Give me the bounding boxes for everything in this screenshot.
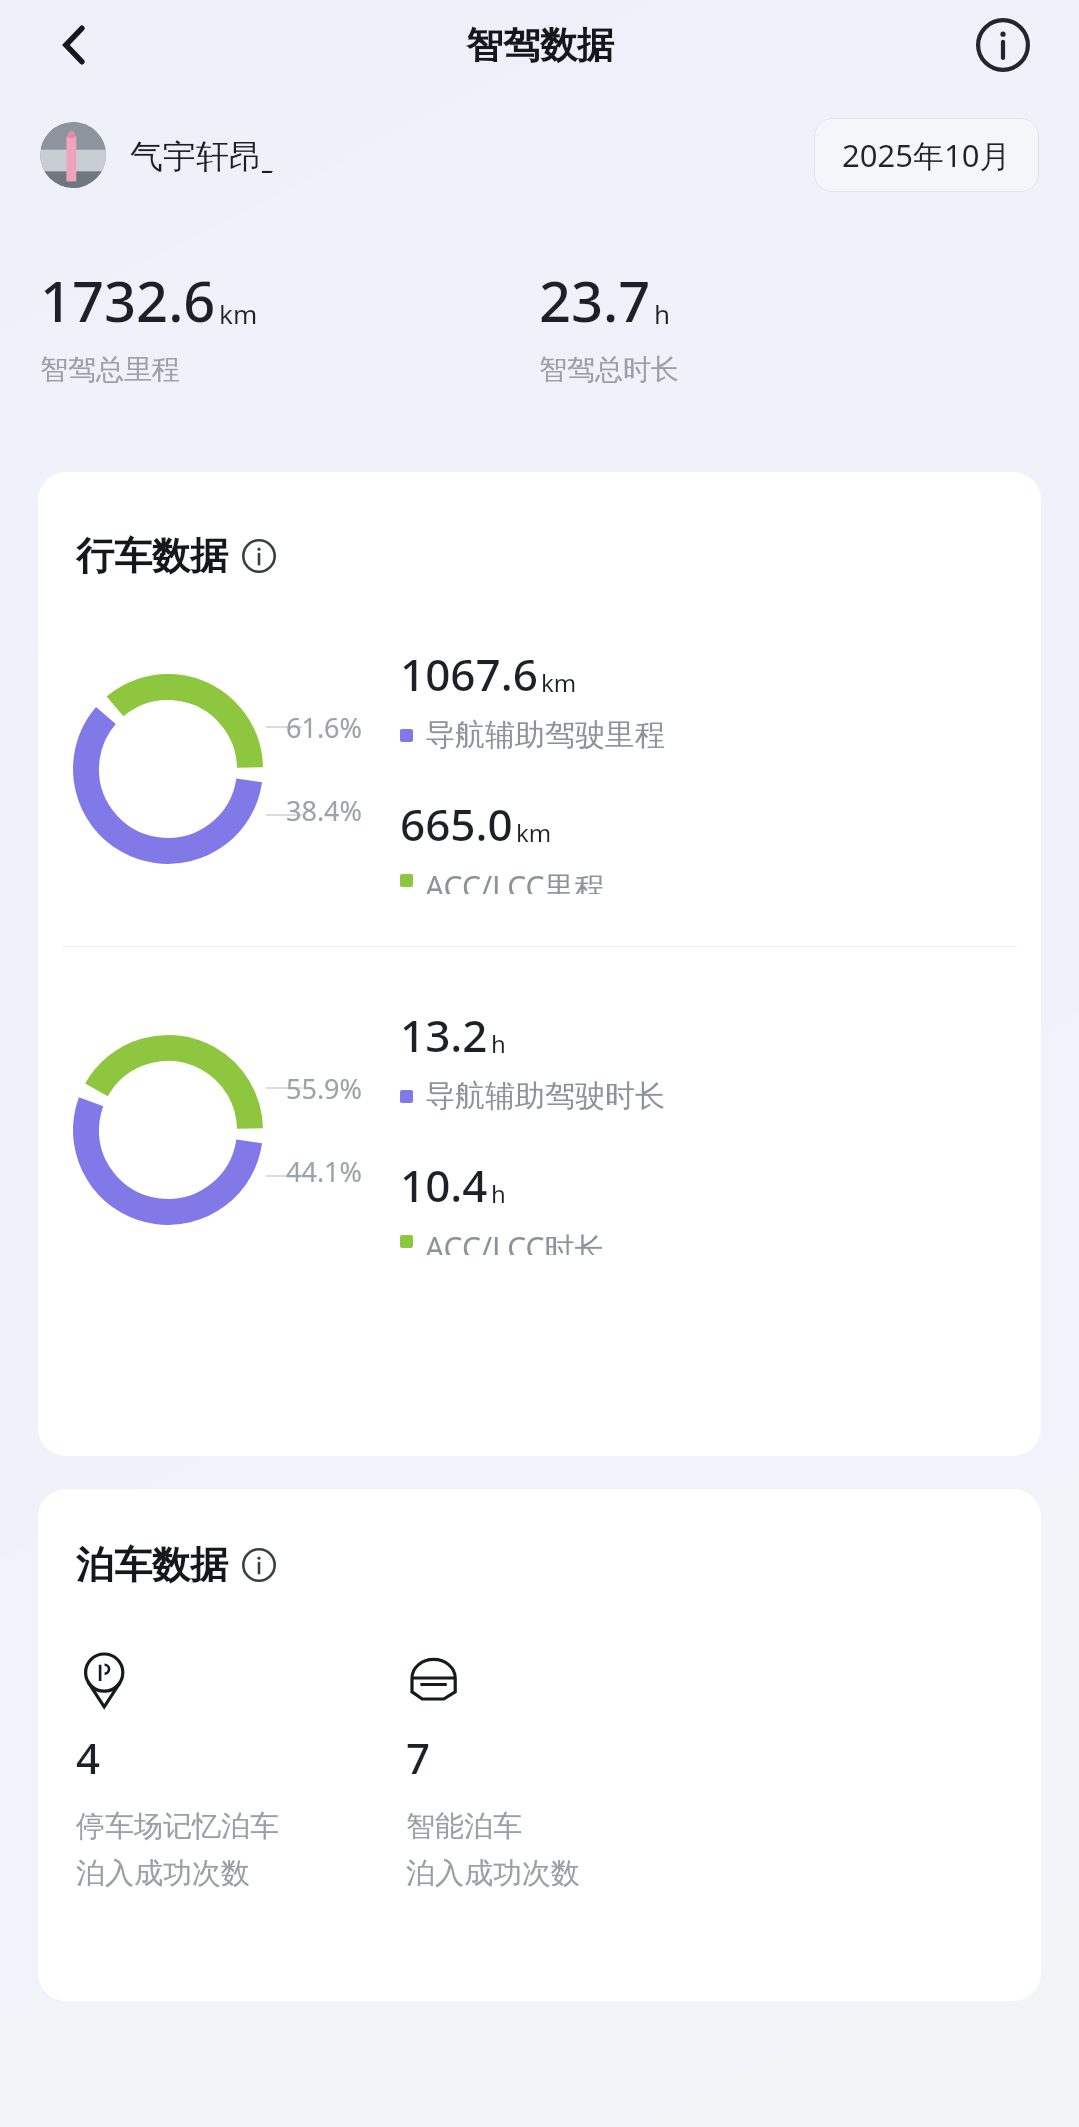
staticText: 10.4	[400, 1155, 488, 1215]
button[interactable]: 10.4	[400, 1155, 605, 1255]
staticText: 泊入成功次数	[76, 1855, 250, 1892]
button[interactable]: 气宇轩昂_	[40, 122, 277, 188]
staticText: h	[491, 1177, 506, 1210]
staticText: 7	[406, 1729, 431, 1786]
staticText: 44.1%	[286, 1153, 363, 1190]
staticText: 23.7	[539, 262, 651, 338]
staticText: 行车数据	[76, 532, 228, 580]
staticText: 智驾总里程	[40, 352, 180, 387]
staticText: ACC/LCC时长	[425, 1227, 605, 1255]
staticText: km	[516, 816, 552, 849]
staticText: 38.4%	[286, 792, 363, 829]
staticText: 55.9%	[286, 1070, 363, 1107]
staticText: h	[654, 296, 671, 331]
button[interactable]: 665.0	[400, 794, 605, 894]
button[interactable]: 1067.6	[400, 644, 665, 754]
staticText: 4	[76, 1729, 101, 1786]
staticText: 665.0	[400, 794, 513, 854]
button[interactable]: 7	[406, 1651, 1041, 1892]
staticText: 导航辅助驾驶时长	[425, 1077, 665, 1115]
staticText: ACC/LCC里程	[425, 866, 605, 894]
staticText: 泊车数据	[76, 1541, 228, 1589]
staticText: 停车场记忆泊车	[76, 1808, 279, 1845]
staticText: 13.2	[400, 1005, 488, 1065]
button[interactable]: Info	[967, 9, 1039, 81]
staticText: km	[219, 296, 258, 331]
staticText: 导航辅助驾驶里程	[425, 716, 665, 754]
button[interactable]: 泊车数据	[38, 1489, 1041, 2001]
button[interactable]: 行车数据	[38, 472, 1041, 1456]
staticText: 1732.6	[40, 262, 216, 338]
staticText: 智驾数据	[466, 22, 614, 69]
button[interactable]: 行车数据	[76, 532, 276, 580]
button[interactable]: 泊车数据	[76, 1541, 276, 1589]
staticText: 1067.6	[400, 644, 538, 704]
staticText: 智驾总时长	[539, 352, 679, 387]
staticText: 2025年10月	[842, 134, 1011, 176]
staticText: 泊入成功次数	[406, 1855, 580, 1892]
staticText: 智能泊车	[406, 1808, 522, 1845]
staticText: 61.6%	[286, 709, 363, 746]
button[interactable]: 13.2	[400, 1005, 665, 1115]
staticText: h	[491, 1027, 506, 1060]
button[interactable]: 4	[76, 1651, 406, 1892]
staticText: 气宇轩昂_	[130, 133, 277, 178]
button[interactable]: Back	[40, 10, 110, 80]
staticText: km	[541, 666, 577, 699]
button[interactable]: 2025年10月	[814, 118, 1039, 192]
